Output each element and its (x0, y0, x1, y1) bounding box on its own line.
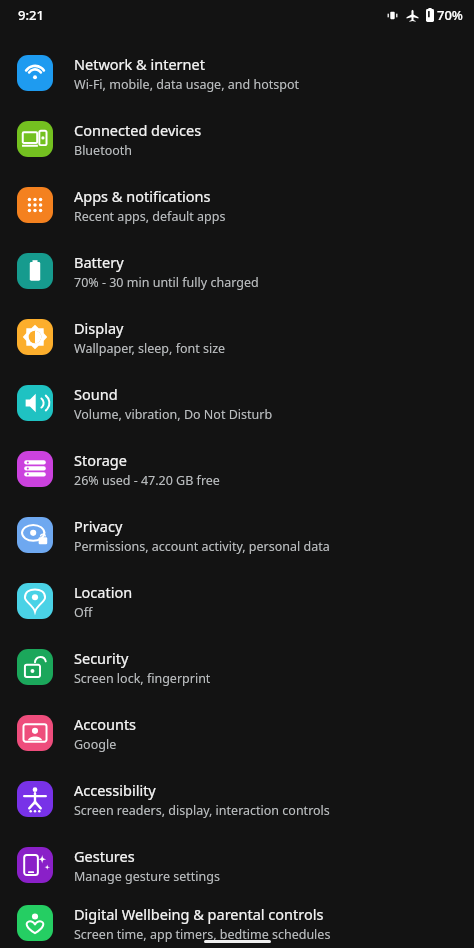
staticText: Sound (74, 384, 118, 404)
staticText: Privacy (74, 516, 123, 536)
other: Battery (426, 8, 434, 22)
button[interactable]: Connected devices (0, 106, 474, 172)
button[interactable]: Battery (0, 238, 474, 304)
staticText: Wi-Fi, mobile, data usage, and hotspot (74, 76, 299, 93)
button[interactable]: Storage (0, 436, 474, 502)
staticText: Wallpaper, sleep, font size (74, 340, 226, 357)
other: Airplane mode (406, 9, 419, 22)
staticText: Network & internet (74, 54, 205, 74)
staticText: Location (74, 582, 133, 602)
staticText: Storage (74, 450, 127, 470)
staticText: 70% - 30 min until fully charged (74, 274, 259, 291)
staticText: Security (74, 648, 129, 668)
button[interactable]: Apps & notifications (0, 172, 474, 238)
staticText: Accounts (74, 714, 137, 734)
button[interactable]: Location (0, 568, 474, 634)
staticText: 70% (437, 6, 463, 24)
button[interactable]: Accounts (0, 700, 474, 766)
other: Vibrate (386, 9, 399, 22)
button[interactable]: Network & internet (0, 40, 474, 106)
staticText: Screen readers, display, interaction con… (74, 802, 330, 819)
button[interactable]: Security (0, 634, 474, 700)
staticText: Bluetooth (74, 142, 133, 159)
staticText: Recent apps, default apps (74, 208, 226, 225)
staticText: 9:21 (18, 6, 44, 24)
staticText: Permissions, account activity, personal … (74, 538, 330, 555)
button[interactable]: Display (0, 304, 474, 370)
staticText: Digital Wellbeing & parental controls (74, 904, 324, 924)
staticText: Battery (74, 252, 124, 272)
staticText: Gestures (74, 846, 135, 866)
staticText: Accessibility (74, 780, 156, 800)
staticText: Connected devices (74, 120, 202, 140)
staticText: Screen lock, fingerprint (74, 670, 211, 687)
staticText: Volume, vibration, Do Not Disturb (74, 406, 273, 423)
staticText: Google (74, 736, 117, 753)
button[interactable]: Privacy (0, 502, 474, 568)
button[interactable]: Accessibility (0, 766, 474, 832)
staticText: Apps & notifications (74, 186, 211, 206)
staticText: Display (74, 318, 124, 338)
button[interactable]: Digital Wellbeing & parental controls (0, 898, 474, 948)
staticText: Screen time, app timers, bedtime schedul… (74, 926, 331, 943)
button[interactable]: Gestures (0, 832, 474, 898)
staticText: Off (74, 604, 93, 621)
staticText: 26% used - 47.20 GB free (74, 472, 220, 489)
button[interactable]: Sound (0, 370, 474, 436)
staticText: Manage gesture settings (74, 868, 220, 885)
